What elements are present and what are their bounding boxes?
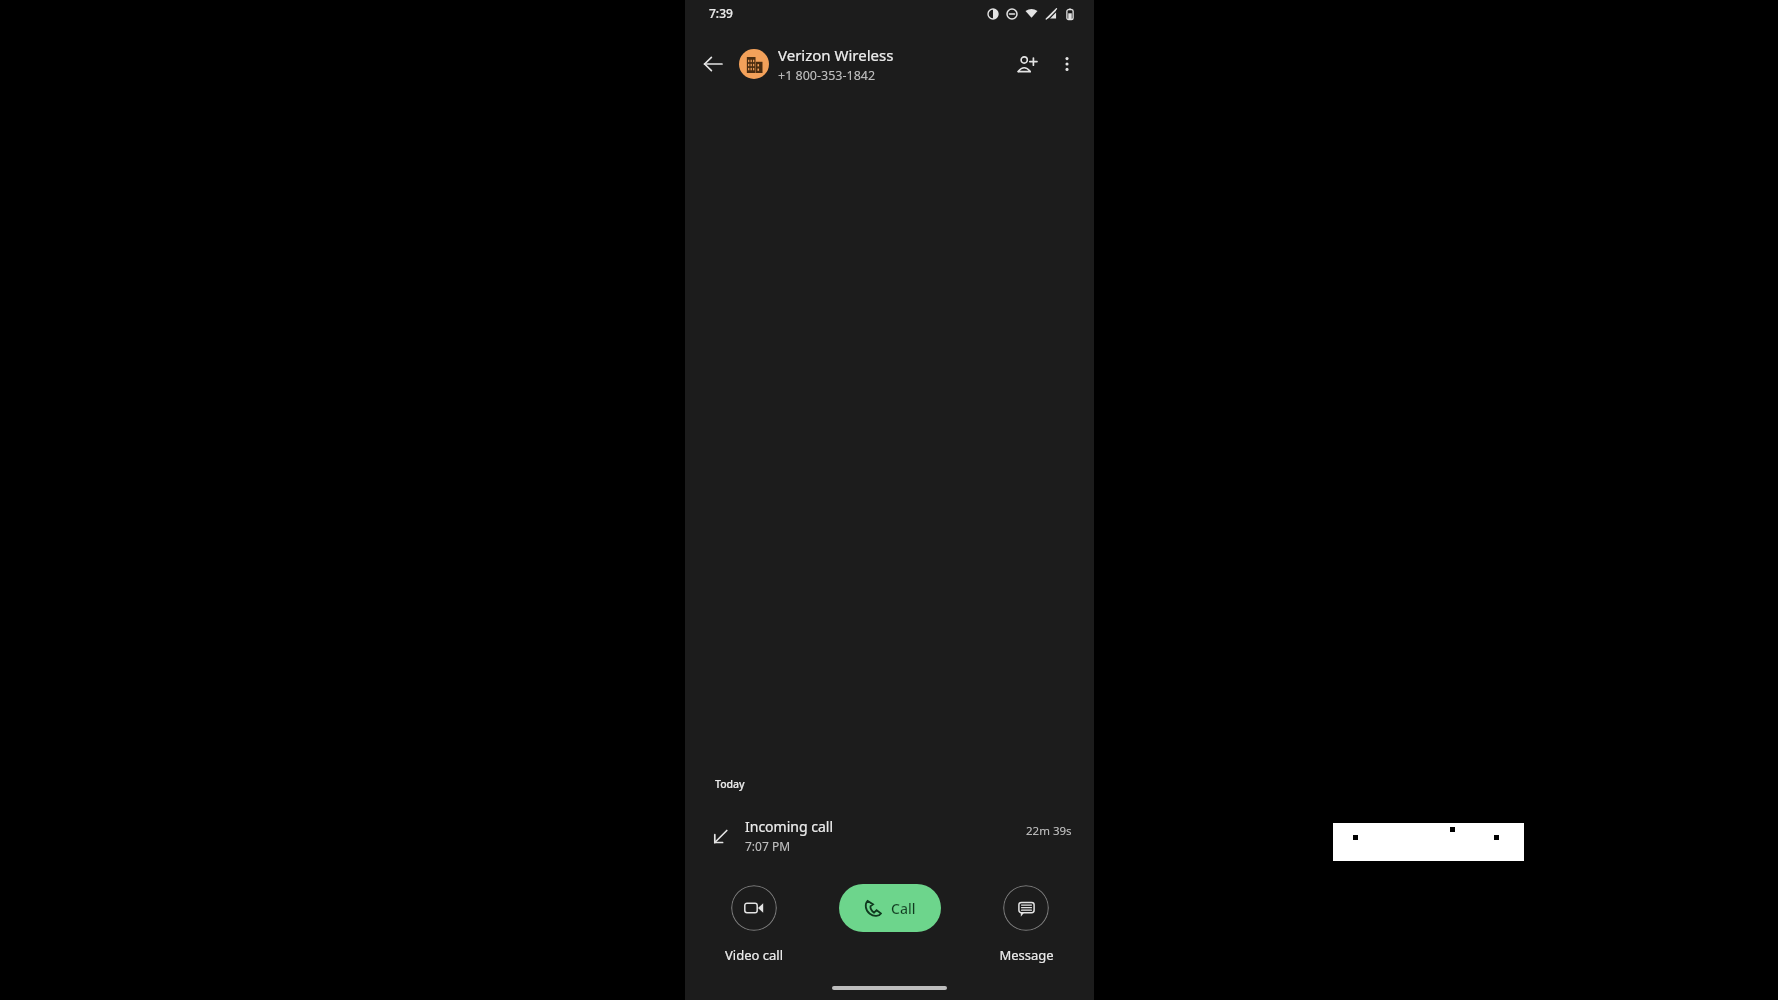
button[interactable]: Message: [1003, 885, 1049, 931]
button[interactable]: Verizon Wireless: [778, 45, 1006, 84]
staticText: Today: [715, 777, 745, 791]
staticText: Message: [999, 946, 1054, 964]
button[interactable]: Video call: [731, 885, 777, 931]
staticText: 7:39: [709, 5, 733, 21]
button[interactable]: Back: [693, 44, 733, 84]
staticText: Call: [891, 899, 916, 918]
staticText: 7:07 PM: [745, 838, 791, 854]
staticText: Verizon Wireless: [778, 45, 894, 65]
button[interactable]: Incoming call: [685, 815, 1094, 856]
button[interactable]: Call: [839, 884, 941, 932]
button[interactable]: Contact photo: [739, 49, 769, 79]
button[interactable]: Add contact: [1006, 43, 1048, 85]
button[interactable]: More options: [1048, 45, 1086, 83]
staticText: Incoming call: [745, 817, 833, 836]
staticText: +1 800-353-1842: [778, 67, 876, 84]
staticText: Video call: [725, 946, 783, 964]
staticText: 22m 39s: [1026, 823, 1072, 839]
